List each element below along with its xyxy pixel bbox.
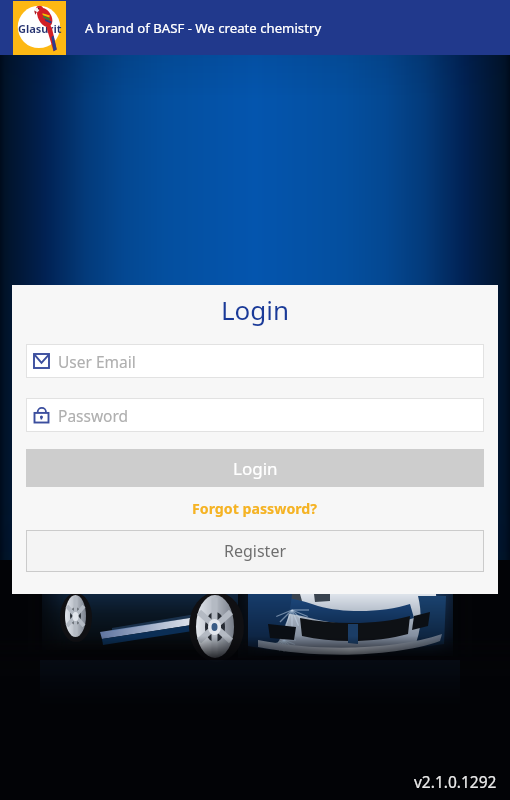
staticText: Register bbox=[224, 540, 287, 562]
button[interactable]: User Email bbox=[26, 344, 484, 378]
staticText: Forgot password? bbox=[192, 499, 318, 518]
staticText: Glasurit bbox=[18, 21, 62, 36]
staticText: Login bbox=[233, 457, 278, 480]
button[interactable]: Login bbox=[26, 449, 484, 487]
button[interactable]: Register bbox=[26, 530, 484, 572]
staticText: Password bbox=[58, 405, 129, 426]
button[interactable]: Password bbox=[26, 398, 484, 432]
button[interactable]: Forgot password? bbox=[26, 487, 484, 530]
other: Glasurit logo bbox=[13, 1, 66, 55]
staticText: User Email bbox=[58, 351, 136, 372]
staticText: Login bbox=[26, 292, 484, 327]
staticText: A brand of BASF - We create chemistry bbox=[85, 19, 322, 37]
staticText: v2.1.0.1292 bbox=[414, 771, 497, 792]
